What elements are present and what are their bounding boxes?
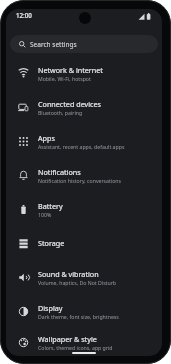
staticText: Network & internet bbox=[38, 65, 103, 75]
staticText: Storage bbox=[38, 238, 65, 248]
staticText: Sound & vibration bbox=[38, 269, 99, 279]
staticText: Dark theme, font size, brightness bbox=[38, 313, 119, 320]
staticText: Search settings bbox=[30, 40, 77, 49]
staticText: Apps bbox=[38, 133, 55, 143]
staticText: Bluetooth, pairing bbox=[38, 109, 83, 116]
button[interactable]: Display bbox=[6, 294, 162, 328]
staticText: Wallpaper & style bbox=[38, 334, 97, 344]
staticText: Display bbox=[38, 303, 63, 313]
button[interactable]: Sound & vibration bbox=[6, 260, 162, 294]
staticText: Notification history, conversations bbox=[38, 177, 122, 184]
staticText: 100% bbox=[38, 211, 52, 218]
button[interactable]: Storage bbox=[6, 226, 162, 260]
staticText: Connected devices bbox=[38, 99, 101, 109]
button[interactable]: Apps bbox=[6, 124, 162, 158]
button[interactable]: Network & internet bbox=[6, 56, 162, 90]
button[interactable]: Connected devices bbox=[6, 90, 162, 124]
staticText: 12:00 bbox=[16, 11, 32, 19]
button[interactable]: Search settings bbox=[10, 35, 158, 53]
staticText: Mobile, Wi-Fi, hotspot bbox=[38, 75, 91, 82]
staticText: Battery bbox=[38, 201, 63, 211]
staticText: Notifications bbox=[38, 167, 81, 177]
button[interactable]: Battery bbox=[6, 192, 162, 226]
staticText: Colors, themed icons, app grid bbox=[38, 344, 113, 351]
button[interactable]: Notifications bbox=[6, 158, 162, 192]
staticText: Volume, haptics, Do Not Disturb bbox=[38, 279, 117, 286]
staticText: Assistant, recent apps, default apps bbox=[38, 143, 125, 150]
button[interactable]: Wallpaper & style bbox=[6, 328, 162, 356]
